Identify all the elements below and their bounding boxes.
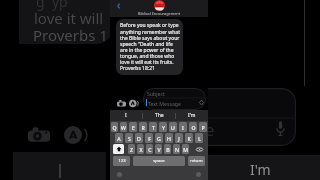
other: Send [199,100,204,105]
button[interactable]: T [149,122,157,132]
staticText: P [201,124,205,131]
staticText: L [198,135,201,142]
staticText: H [167,135,171,142]
staticText: e [205,118,215,141]
button[interactable]: W [120,122,127,132]
button[interactable]: space [133,156,185,166]
button[interactable]: E [129,122,137,132]
staticText: U [171,124,175,131]
button[interactable]: Biblical Encouragement [110,0,208,16]
button[interactable]: Q [111,122,118,132]
button[interactable]: Z [128,144,135,154]
staticText: 123 [118,158,126,164]
staticText: O [191,124,196,131]
button[interactable]: L [195,133,203,143]
staticText: return [190,158,203,164]
button[interactable]: Subject [143,88,206,110]
staticText: G [157,135,161,142]
button[interactable]: I [179,122,187,132]
button[interactable]: O [189,122,197,132]
button[interactable]: V [155,144,162,154]
button[interactable]: U [169,122,177,132]
staticText: S [128,135,131,142]
button[interactable]: J [175,133,183,143]
staticText: N [175,146,179,153]
staticText: K [187,135,191,142]
button[interactable]: Back [115,2,123,10]
staticText: T [152,124,155,131]
button[interactable]: P [199,122,207,132]
staticText: Q [112,124,117,131]
button[interactable]: M [182,144,189,154]
button[interactable]: Y [159,122,167,132]
button[interactable]: Camera [28,127,50,143]
staticText: space [153,158,165,164]
staticText: M [183,146,188,153]
staticText: D [137,135,141,142]
button[interactable]: Emoji [117,172,122,177]
staticText: g yp [36,0,68,11]
staticText: The [155,112,164,119]
button[interactable]: Dictation [196,172,201,177]
button[interactable]: X [137,144,144,154]
staticText: Text Message [148,100,181,107]
button[interactable]: R [139,122,147,132]
button[interactable]: G [155,133,163,143]
button[interactable]: K [185,133,193,143]
staticText: I'm [250,160,271,179]
staticText: Z [130,146,133,153]
button[interactable]: D [135,133,143,143]
staticText: Subject [147,90,165,97]
staticText: E [132,124,135,131]
staticText: A [117,135,121,142]
button[interactable] [196,88,296,146]
staticText: R [141,124,145,131]
button[interactable]: Before you speak or type anything rememb… [116,19,183,75]
staticText: I'm [188,112,196,119]
button[interactable]: Backspace [194,144,205,154]
button[interactable]: return [188,156,205,166]
button[interactable]: The [143,110,175,121]
staticText: I [125,112,127,119]
staticText: X [139,146,143,153]
staticText: I [182,124,184,131]
button[interactable]: Shift [113,144,124,154]
staticText: B [166,146,170,153]
button[interactable]: I'm [176,110,208,121]
button[interactable]: I [110,110,142,121]
staticText: C [148,146,152,153]
button[interactable]: App Store [129,99,138,108]
button[interactable]: A [115,133,123,143]
staticText: Biblical Encouragement [138,11,181,16]
staticText: W [121,124,126,131]
button[interactable]: S [125,133,133,143]
staticText: V [157,146,161,153]
other: Dictate [276,121,285,136]
button[interactable]: App Store [64,125,86,145]
staticText: F [148,135,151,142]
staticText: love it will [34,8,104,28]
button[interactable]: Camera [117,100,126,107]
button[interactable]: 123 [113,156,130,166]
button[interactable]: C [146,144,153,154]
button[interactable]: F [145,133,153,143]
staticText: Proverbs 1 [33,25,108,45]
button[interactable]: H [165,133,173,143]
staticText: Before you speak or type anything rememb… [120,22,180,72]
button[interactable]: N [173,144,180,154]
staticText: J [178,135,180,142]
staticText: Y [162,124,165,131]
button[interactable]: B [164,144,171,154]
